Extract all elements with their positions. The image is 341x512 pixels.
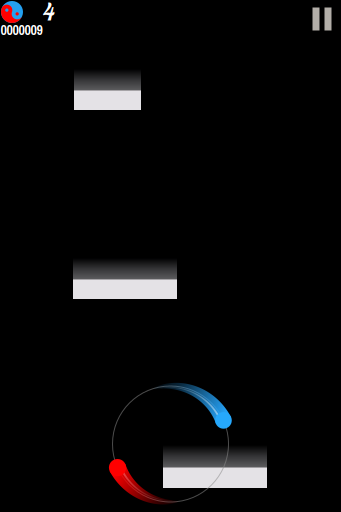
staticText: 4 [43,0,54,26]
button[interactable]: Pause [312,7,331,30]
staticText: 0000009 [0,21,42,39]
